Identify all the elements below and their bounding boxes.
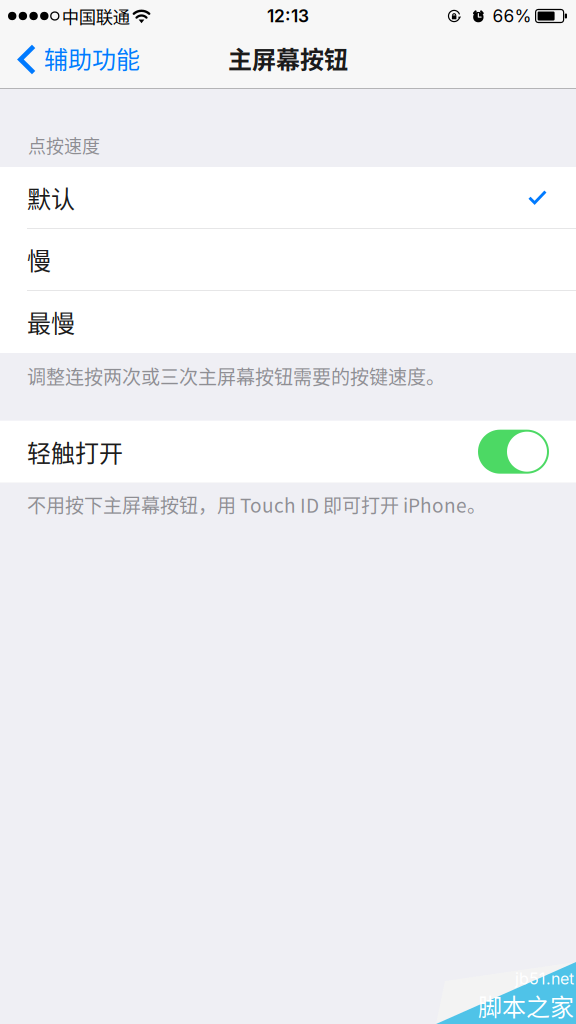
button[interactable]: 最慢 xyxy=(0,291,576,353)
staticText: 轻触打开 xyxy=(27,434,123,469)
staticText: 66% xyxy=(493,5,532,26)
staticText: 辅助功能 xyxy=(44,41,140,75)
staticText: 不用按下主屏幕按钮，用 Touch ID 即可打开 iPhone。 xyxy=(27,491,486,518)
button[interactable]: 轻触打开 xyxy=(0,421,576,483)
staticText: 调整连按两次或三次主屏幕按钮需要的按键速度。 xyxy=(27,362,445,390)
button[interactable]: 辅助功能 xyxy=(0,32,150,89)
staticText: 慢 xyxy=(27,242,51,277)
staticText: jb51.net xyxy=(515,969,574,988)
staticText: 点按速度 xyxy=(28,132,100,158)
staticText: 12:13 xyxy=(267,5,309,26)
staticText: 中国联通 xyxy=(62,3,130,29)
button[interactable]: 慢 xyxy=(0,229,576,290)
staticText: 脚本之家 xyxy=(478,988,574,1023)
staticText: 默认 xyxy=(27,180,75,215)
button[interactable]: 默认 xyxy=(0,167,576,228)
staticText: 最慢 xyxy=(27,305,75,339)
staticText: 主屏幕按钮 xyxy=(228,41,348,75)
